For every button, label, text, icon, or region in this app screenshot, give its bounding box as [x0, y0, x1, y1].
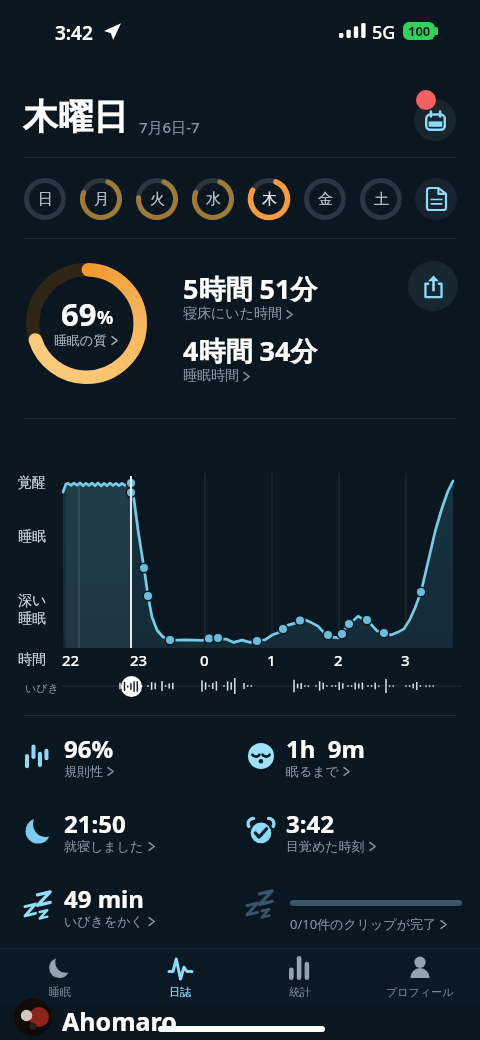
staticText: 3:42 [55, 20, 93, 46]
button[interactable]: 日誌 [120, 949, 240, 1005]
staticText: 0/10件のクリップが完了 [290, 915, 436, 933]
staticText: 統計 [289, 985, 311, 999]
button[interactable]: 月 [77, 175, 125, 223]
button[interactable]: 1h 9m [242, 727, 464, 785]
staticText: 就寝しました [64, 838, 144, 854]
staticText: 火 [150, 190, 165, 209]
staticText: 眠るまで [286, 763, 339, 779]
staticText: 49 min [64, 882, 144, 915]
button[interactable]: 21:50 [20, 802, 242, 860]
button[interactable]: Share [408, 261, 458, 311]
button[interactable]: 96% [20, 727, 242, 785]
staticText: 木 [262, 190, 277, 209]
button[interactable]: 土 [357, 175, 405, 223]
button[interactable]: 3:42 [242, 802, 464, 860]
staticText: 5時間 51分 [183, 270, 318, 307]
staticText: 月 [94, 190, 109, 209]
staticText: 23 [130, 650, 148, 670]
button[interactable]: プロフィール [360, 949, 480, 1005]
button[interactable]: 睡眠 [0, 949, 120, 1005]
staticText: プロフィール [386, 985, 454, 999]
staticText: 金 [318, 190, 333, 209]
button[interactable]: Calendar [414, 99, 456, 141]
staticText: 96% [64, 732, 114, 765]
staticText: 深い [18, 592, 47, 610]
staticText: いびきをかく [64, 913, 144, 929]
staticText: 目覚めた時刻 [286, 838, 365, 854]
button[interactable]: 木 [245, 175, 293, 223]
staticText: 睡眠時間 [183, 367, 239, 385]
staticText: 睡眠 [49, 985, 71, 999]
staticText: 睡眠 [18, 610, 46, 628]
button[interactable]: Play snoring audio [121, 676, 142, 697]
staticText: 覚醒 [18, 474, 46, 492]
staticText: 1h 9m [286, 732, 365, 765]
staticText: 土 [374, 190, 389, 209]
button[interactable]: 49 min [20, 877, 242, 935]
button[interactable]: 4時間 34分 [183, 332, 393, 390]
button[interactable]: Notes [412, 175, 460, 223]
staticText: 規則性 [64, 763, 103, 779]
staticText: 1 [267, 650, 276, 670]
staticText: 69 [61, 293, 97, 335]
staticText: % [97, 305, 114, 330]
button[interactable]: 火 [133, 175, 181, 223]
button[interactable]: 統計 [240, 949, 360, 1005]
staticText: Ahomaro [62, 1004, 177, 1038]
button[interactable]: 金 [301, 175, 349, 223]
button[interactable]: 0/10件のクリップが完了 [242, 877, 464, 935]
staticText: 水 [206, 190, 221, 209]
staticText: 寝床にいた時間 [183, 305, 282, 323]
staticText: 7月6日-7 [139, 117, 200, 137]
staticText: 睡眠 [18, 528, 46, 546]
staticText: 日誌 [169, 985, 191, 999]
staticText: 睡眠の質 [54, 332, 107, 348]
staticText: 0 [200, 650, 209, 670]
staticText: 2 [334, 650, 343, 670]
staticText: 木曜日 [23, 95, 128, 139]
staticText: 4時間 34分 [183, 332, 318, 369]
staticText: 22 [62, 650, 80, 670]
button[interactable]: 日 [21, 175, 69, 223]
staticText: 時間 [18, 651, 46, 669]
staticText: 日 [38, 190, 53, 209]
staticText: 21:50 [64, 807, 126, 840]
staticText: いびき [25, 681, 59, 695]
staticText: 100 [408, 22, 431, 40]
staticText: 3:42 [286, 807, 334, 840]
button[interactable]: 5時間 51分 [183, 270, 393, 328]
staticText: 5G [372, 20, 396, 45]
button[interactable]: 水 [189, 175, 237, 223]
staticText: 3 [401, 650, 410, 670]
